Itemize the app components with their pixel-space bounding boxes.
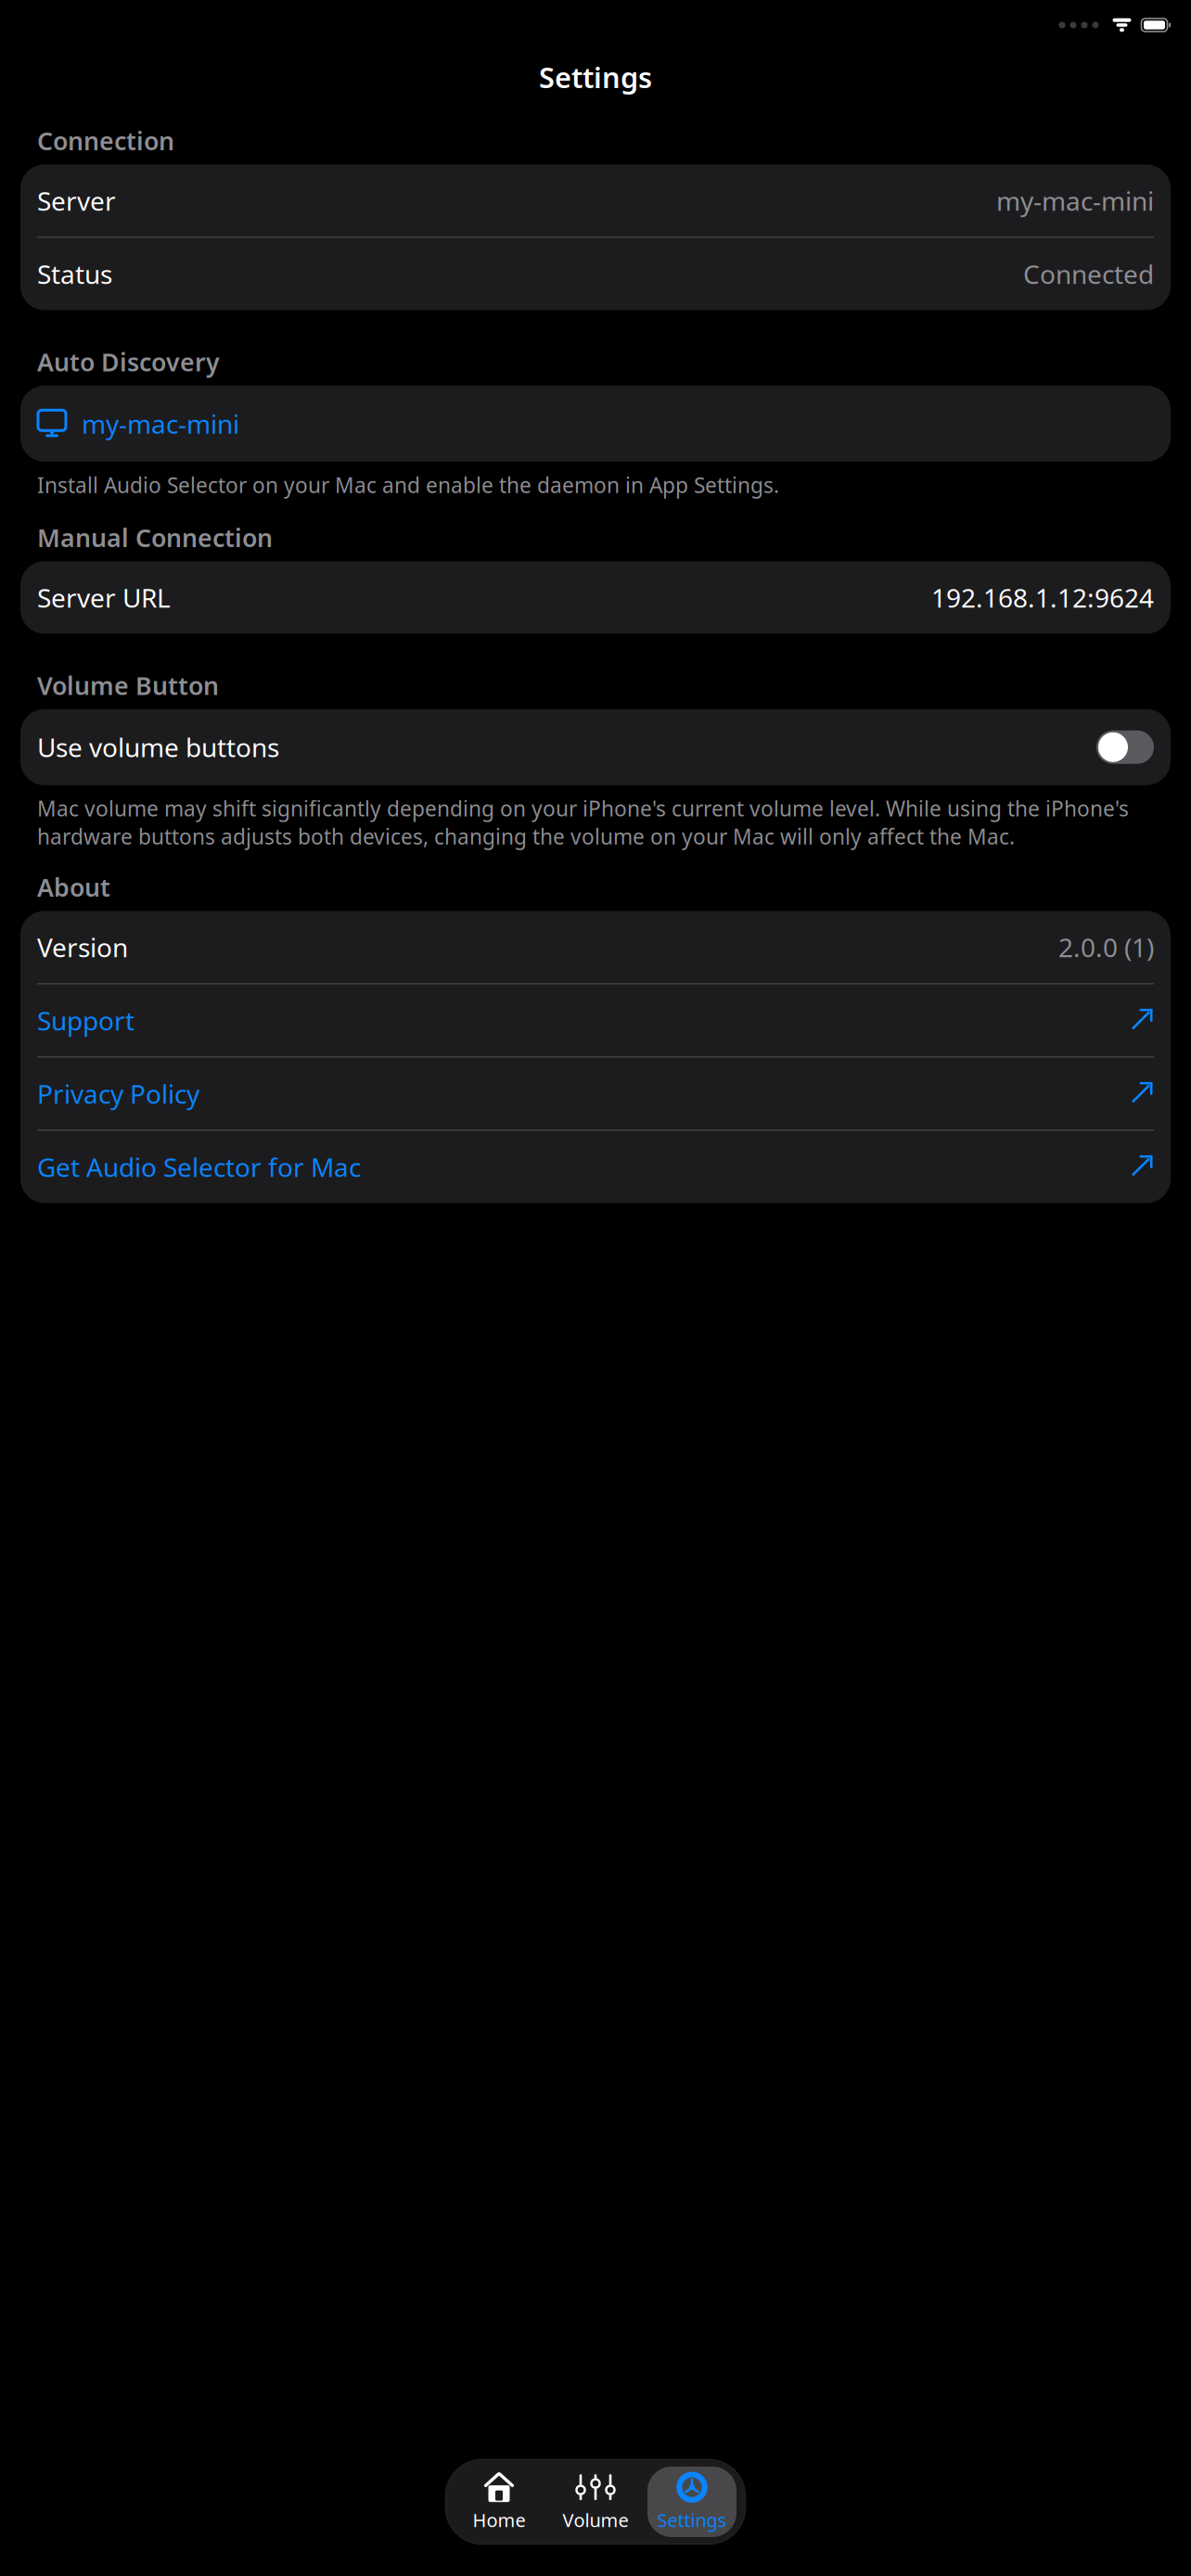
staticText: Privacy Policy	[37, 1076, 199, 1111]
staticText: About	[37, 871, 110, 904]
staticText: Server URL	[37, 580, 171, 615]
button[interactable]: Home	[455, 2467, 544, 2537]
staticText: Status	[37, 257, 112, 291]
staticText: Home	[473, 2508, 525, 2532]
button[interactable]: Support	[20, 984, 1171, 1057]
staticText: my-mac-mini	[82, 406, 239, 441]
staticText: 192.168.1.12:9624	[931, 580, 1154, 615]
staticText: Version	[37, 930, 128, 964]
button[interactable]: Server URL	[20, 561, 1171, 634]
staticText: Volume	[563, 2508, 628, 2532]
staticText: Connection	[37, 124, 174, 157]
staticText: Settings	[539, 58, 652, 96]
staticText: Manual Connection	[37, 521, 273, 554]
staticText: my-mac-mini	[996, 183, 1154, 218]
staticText: Get Audio Selector for Mac	[37, 1150, 361, 1184]
button[interactable]: Use volume buttons	[20, 709, 1171, 785]
staticText: Support	[37, 1003, 134, 1038]
button[interactable]: my-mac-mini	[20, 386, 1171, 462]
button[interactable]: Settings	[647, 2467, 736, 2537]
staticText: Use volume buttons	[37, 730, 279, 764]
staticText: Settings	[657, 2508, 727, 2532]
button[interactable]: Volume	[551, 2467, 640, 2537]
staticText: Server	[37, 183, 116, 218]
staticText: Install Audio Selector on your Mac and e…	[37, 471, 779, 499]
staticText: Volume Button	[37, 669, 219, 702]
staticText: Mac volume may shift significantly depen…	[37, 794, 1129, 850]
staticText: 2.0.0 (1)	[1058, 930, 1154, 964]
button[interactable]: Privacy Policy	[20, 1057, 1171, 1130]
button[interactable]: Get Audio Selector for Mac	[20, 1131, 1171, 1203]
staticText: Connected	[1023, 257, 1154, 291]
staticText: Auto Discovery	[37, 345, 220, 378]
